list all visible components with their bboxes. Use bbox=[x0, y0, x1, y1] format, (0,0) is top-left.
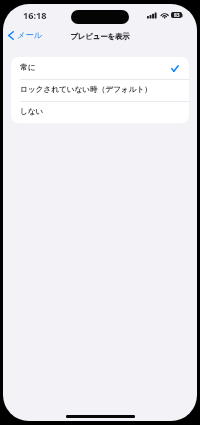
staticText: メール bbox=[17, 30, 43, 40]
button[interactable]: 常に bbox=[11, 57, 189, 79]
staticText: 常に bbox=[20, 63, 36, 73]
staticText: しない bbox=[20, 107, 44, 117]
button[interactable]: ロックされていない時（デフォルト） bbox=[11, 79, 189, 101]
staticText: 16:18 bbox=[23, 9, 47, 22]
button[interactable]: しない bbox=[11, 101, 189, 123]
staticText: プレビューを表示 bbox=[70, 32, 130, 41]
staticText: ロックされていない時（デフォルト） bbox=[20, 85, 152, 95]
staticText: 83 bbox=[174, 12, 180, 18]
other: Selected bbox=[171, 65, 179, 72]
button[interactable]: メール bbox=[3, 28, 49, 42]
